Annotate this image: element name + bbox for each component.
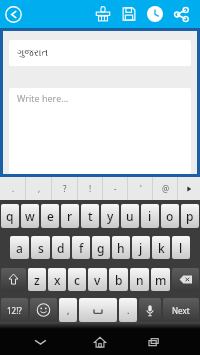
staticText: r <box>67 208 73 224</box>
staticText: , <box>67 304 70 316</box>
button[interactable]: Share <box>168 1 194 27</box>
staticText: Next <box>172 305 190 316</box>
staticText: b <box>115 272 123 288</box>
button[interactable]: c <box>68 268 86 291</box>
staticText: d <box>57 240 65 256</box>
button[interactable]: Key <box>30 298 57 322</box>
button[interactable]: More <box>178 177 200 200</box>
button[interactable]: Save <box>116 1 142 27</box>
staticText: - <box>114 183 117 194</box>
button[interactable]: Next <box>163 298 199 322</box>
staticText: . <box>127 304 130 316</box>
staticText: u <box>126 208 134 224</box>
button[interactable]: ! <box>78 177 103 200</box>
staticText: i <box>148 208 152 224</box>
button[interactable]: j <box>132 236 150 259</box>
button[interactable]: ? <box>52 177 78 200</box>
button[interactable]: s <box>31 236 50 259</box>
button[interactable] <box>79 298 117 322</box>
button[interactable]: p <box>181 204 199 228</box>
button[interactable]: f <box>72 236 90 259</box>
staticText: s <box>38 240 44 256</box>
button[interactable]: u <box>121 204 139 228</box>
staticText: y <box>107 208 114 224</box>
button[interactable]: o <box>161 204 179 228</box>
button[interactable]: b <box>109 268 128 291</box>
button[interactable]: Home <box>86 329 114 355</box>
button[interactable]: Key <box>1 268 26 291</box>
button[interactable]: m <box>151 268 170 291</box>
button[interactable]: g <box>92 236 110 259</box>
button[interactable]: Back <box>26 329 54 355</box>
staticText: f <box>79 240 84 256</box>
staticText: o <box>166 208 174 224</box>
button[interactable]: q <box>1 204 19 228</box>
staticText: l <box>179 240 183 256</box>
button[interactable]: x <box>48 268 66 291</box>
button[interactable]: Key <box>139 298 161 322</box>
button[interactable]: a <box>10 236 29 259</box>
button[interactable]: @ <box>153 177 178 200</box>
staticText: x <box>54 272 61 288</box>
staticText: a <box>16 240 23 256</box>
staticText: 12!? <box>7 305 22 316</box>
staticText: h <box>117 240 125 256</box>
staticText: k <box>158 240 165 256</box>
button[interactable]: z <box>28 268 46 291</box>
staticText: z <box>34 272 40 288</box>
button[interactable]: - <box>103 177 128 200</box>
staticText: j <box>139 240 143 256</box>
button[interactable]: v <box>88 268 107 291</box>
button[interactable]: l <box>172 236 190 259</box>
button[interactable]: w <box>21 204 39 228</box>
staticText: ગુજરાત <box>17 48 49 58</box>
button[interactable]: h <box>112 236 130 259</box>
staticText: n <box>136 272 144 288</box>
button[interactable]: . <box>0 177 26 200</box>
button[interactable]: Clear <box>90 1 116 27</box>
staticText: ! <box>89 183 92 194</box>
staticText: p <box>186 208 194 224</box>
staticText: c <box>74 272 80 288</box>
button[interactable]: , <box>26 177 52 200</box>
button[interactable]: . <box>119 298 137 322</box>
staticText: , <box>38 183 41 194</box>
staticText: @ <box>162 183 170 194</box>
button[interactable]: n <box>130 268 149 291</box>
button[interactable]: r <box>61 204 79 228</box>
button[interactable]: Recents <box>140 329 168 355</box>
button[interactable]: k <box>152 236 170 259</box>
staticText: m <box>155 272 167 288</box>
button[interactable]: d <box>52 236 70 259</box>
staticText: ' <box>140 183 142 194</box>
staticText: w <box>25 208 35 224</box>
button[interactable]: i <box>141 204 159 228</box>
button[interactable]: Write here... <box>9 88 191 174</box>
button[interactable]: 12!? <box>1 298 28 322</box>
staticText: q <box>6 208 14 224</box>
button[interactable]: e <box>41 204 59 228</box>
staticText: ? <box>63 183 67 194</box>
button[interactable]: y <box>101 204 119 228</box>
staticText: v <box>94 272 101 288</box>
button[interactable]: ' <box>128 177 153 200</box>
button[interactable]: Back <box>0 1 27 28</box>
staticText: t <box>88 208 93 224</box>
staticText: g <box>97 240 105 256</box>
staticText: Write here... <box>17 92 69 104</box>
button[interactable]: Key <box>172 268 199 291</box>
staticText: . <box>12 183 15 194</box>
button[interactable]: , <box>59 298 77 322</box>
button[interactable]: t <box>81 204 99 228</box>
staticText: e <box>47 208 54 224</box>
button[interactable]: History <box>142 1 168 27</box>
button[interactable]: ગુજરાત <box>9 40 191 66</box>
